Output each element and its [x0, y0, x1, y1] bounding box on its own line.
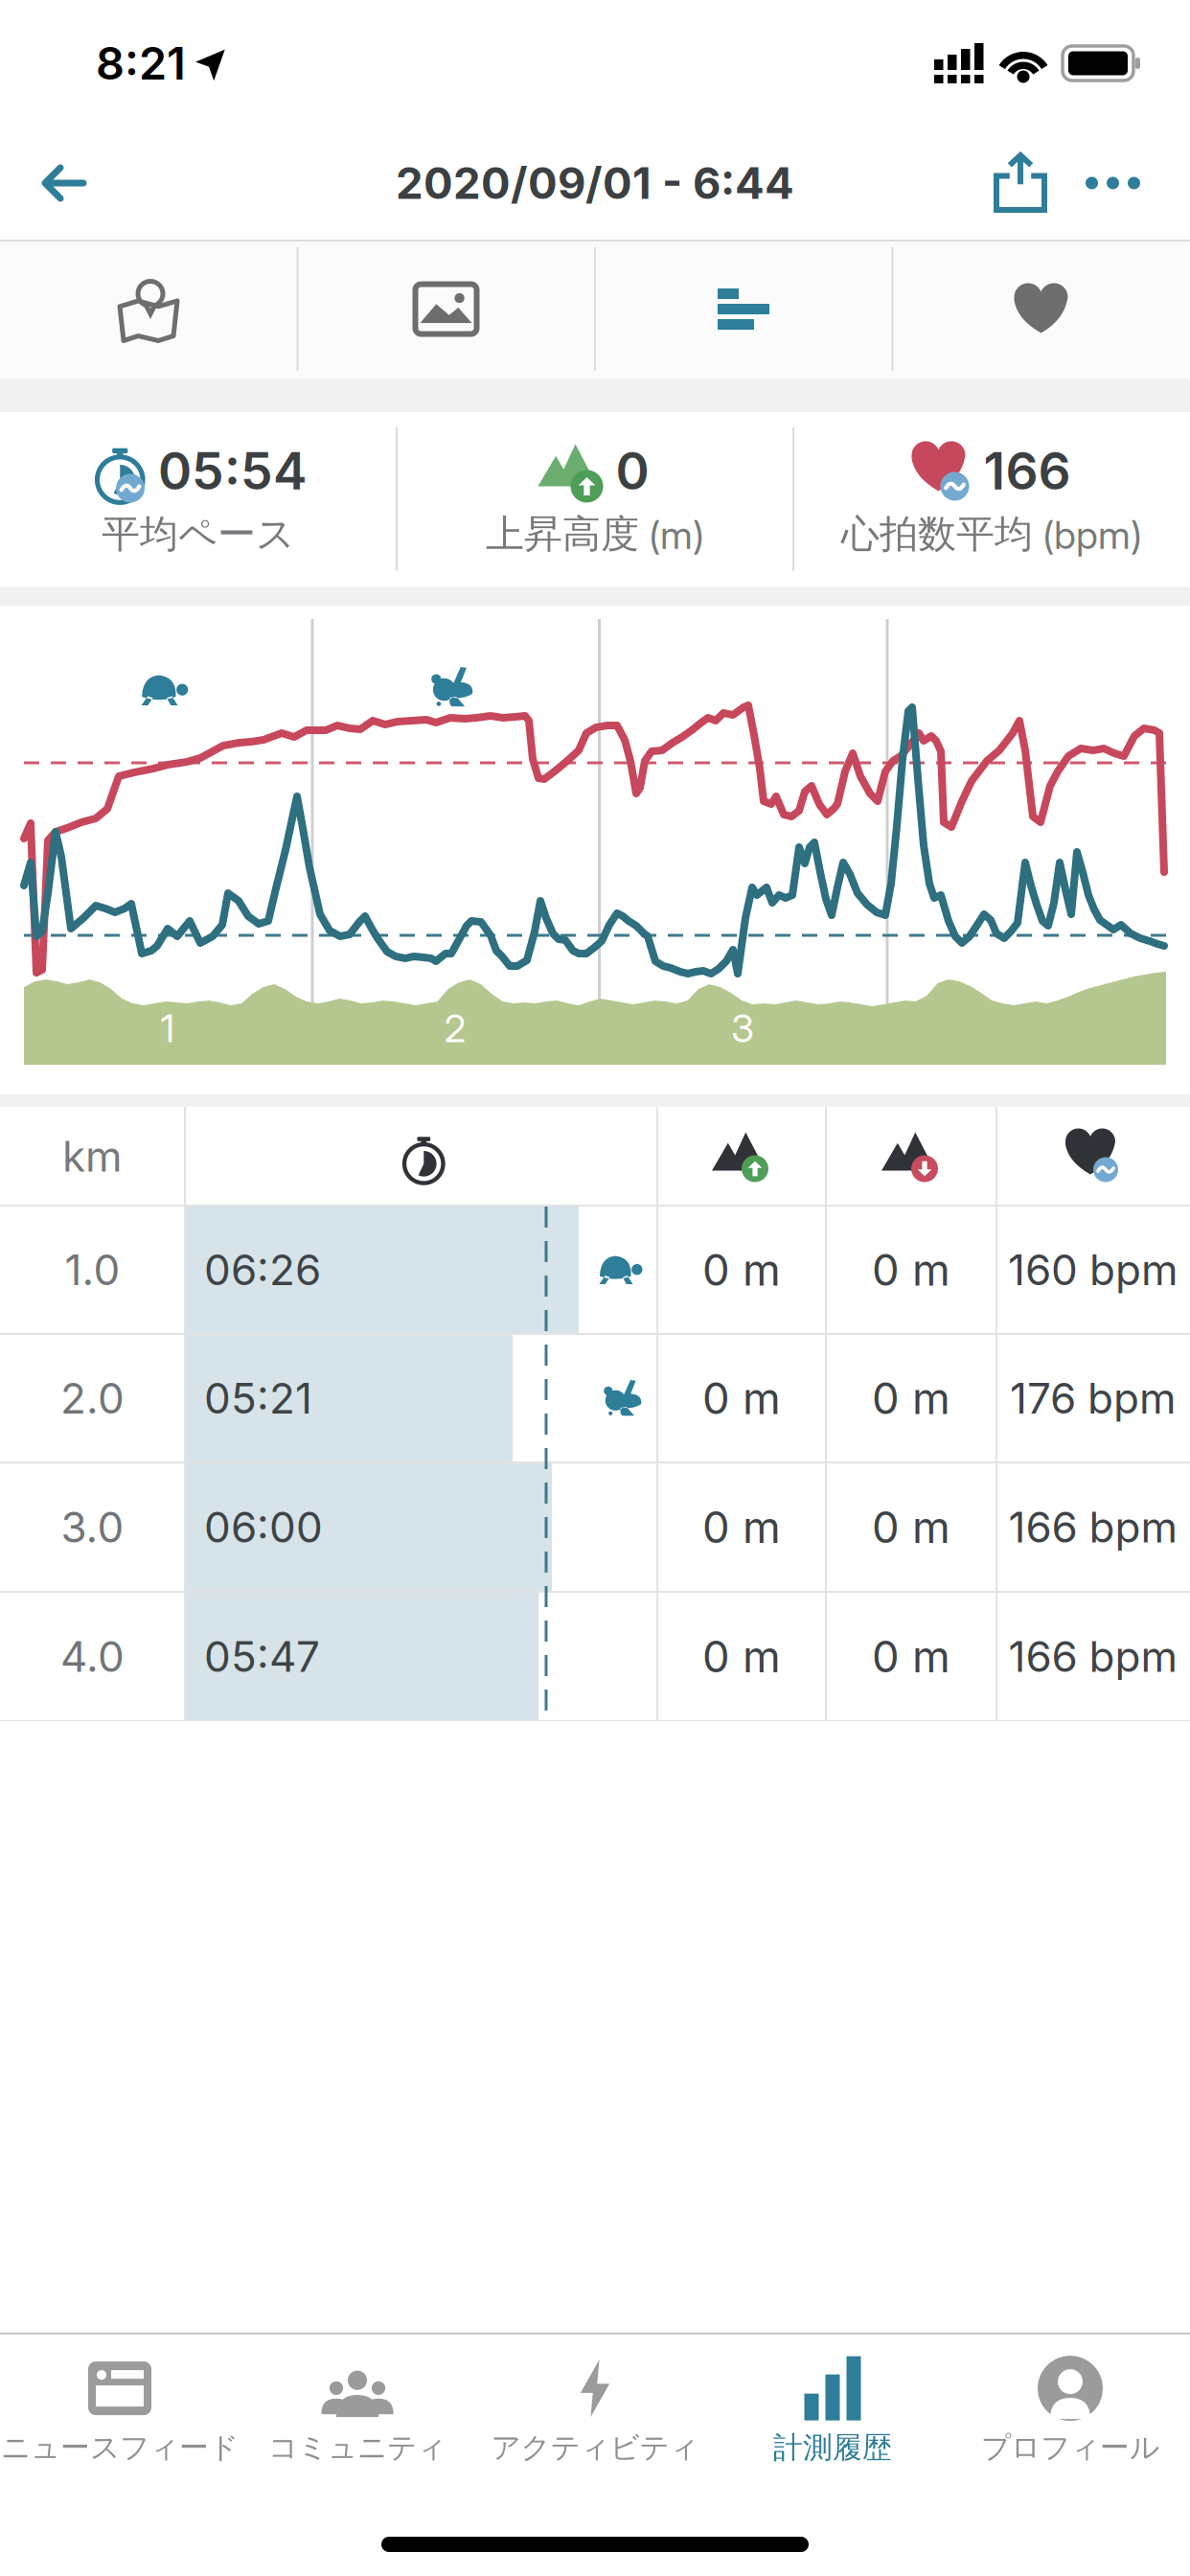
- staticText: 上昇高度 (m): [486, 511, 704, 558]
- button[interactable]: コミュニティ: [239, 2338, 476, 2482]
- staticText: 166: [984, 441, 1071, 501]
- button[interactable]: Share: [994, 134, 1086, 232]
- staticText: 2.0: [60, 1373, 125, 1423]
- staticText: 3: [731, 1006, 754, 1051]
- button[interactable]: プロフィール: [951, 2338, 1189, 2482]
- staticText: 0 m: [702, 1502, 781, 1553]
- staticText: 176 bpm: [1010, 1373, 1177, 1423]
- staticText: 05:21: [204, 1373, 312, 1423]
- staticText: 05:54: [158, 441, 308, 501]
- staticText: 2: [444, 1006, 466, 1051]
- staticText: 06:00: [204, 1502, 323, 1552]
- staticText: プロフィール: [981, 2430, 1159, 2466]
- staticText: 計測履歴: [773, 2430, 892, 2466]
- button[interactable]: Back: [0, 135, 85, 231]
- button[interactable]: Map: [0, 240, 297, 378]
- staticText: 0: [616, 441, 649, 501]
- staticText: km: [62, 1131, 123, 1181]
- staticText: 3.0: [61, 1502, 124, 1552]
- button[interactable]: More: [1086, 138, 1190, 228]
- button[interactable]: ニュースフィード: [1, 2338, 239, 2482]
- button[interactable]: Heart rate: [892, 240, 1190, 378]
- staticText: コミュニティ: [268, 2430, 446, 2466]
- staticText: 0 m: [702, 1373, 781, 1424]
- staticText: 2020/09/01 - 6:44: [396, 157, 794, 209]
- button[interactable]: Charts: [595, 240, 892, 378]
- staticText: 1.0: [65, 1245, 120, 1295]
- staticText: ニュースフィード: [1, 2430, 239, 2466]
- staticText: 06:26: [204, 1245, 321, 1295]
- staticText: 0 m: [702, 1631, 781, 1682]
- staticText: 8:21: [96, 37, 186, 90]
- staticText: 心拍数平均 (bpm): [841, 511, 1142, 558]
- staticText: 166 bpm: [1008, 1632, 1178, 1681]
- staticText: 160 bpm: [1008, 1245, 1179, 1295]
- staticText: 05:47: [204, 1632, 320, 1681]
- button[interactable]: アクティビティ: [476, 2338, 714, 2482]
- button[interactable]: 計測履歴: [714, 2338, 951, 2482]
- staticText: 平均ペース: [102, 511, 295, 558]
- staticText: 0 m: [872, 1631, 950, 1682]
- button[interactable]: Photos: [297, 240, 595, 378]
- staticText: 4.0: [60, 1632, 125, 1681]
- staticText: アクティビティ: [491, 2430, 699, 2466]
- staticText: 0 m: [872, 1373, 950, 1424]
- staticText: 1: [160, 1006, 175, 1051]
- staticText: 0 m: [872, 1502, 950, 1553]
- staticText: 0 m: [872, 1244, 950, 1295]
- staticText: 166 bpm: [1008, 1502, 1178, 1552]
- staticText: 0 m: [702, 1244, 781, 1295]
